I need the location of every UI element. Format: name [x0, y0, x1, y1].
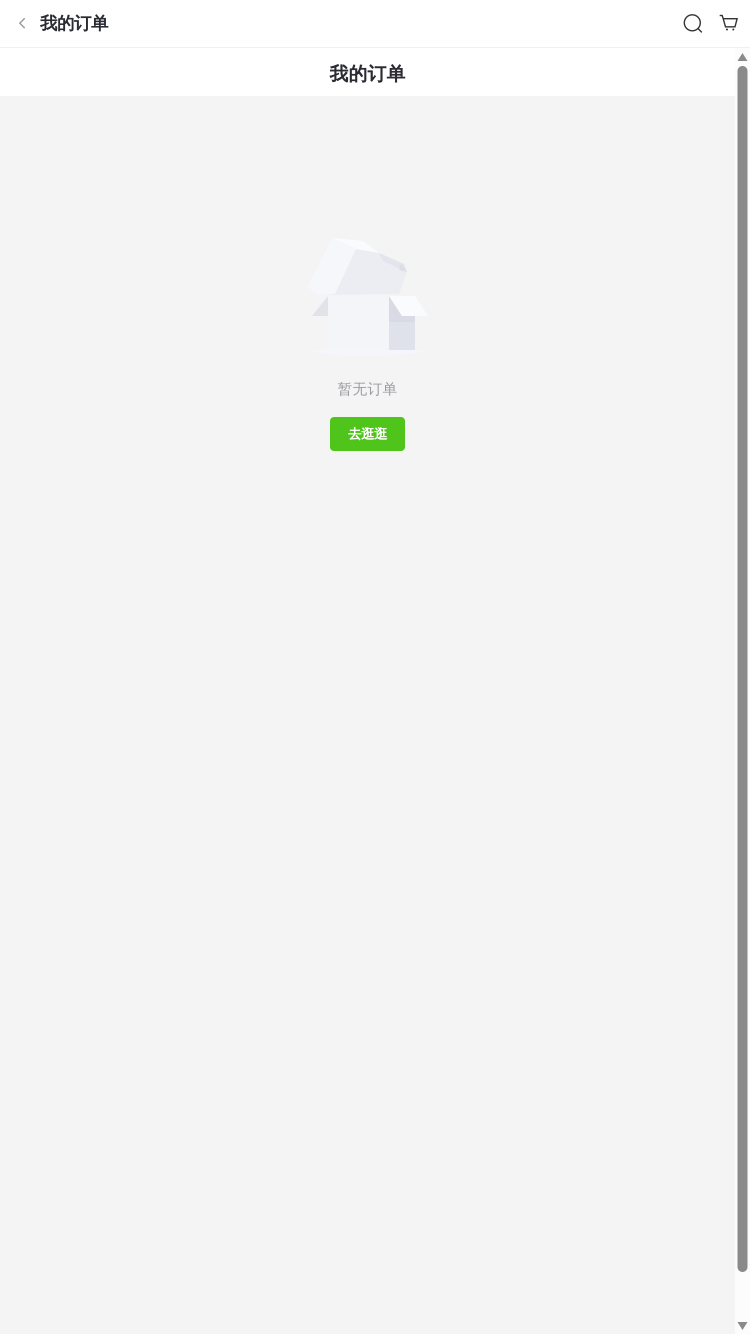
- button[interactable]: Back: [0, 0, 40, 47]
- button[interactable]: 去逛逛: [330, 417, 405, 451]
- staticText: 去逛逛: [348, 426, 387, 442]
- staticText: 我的订单: [40, 13, 108, 34]
- button[interactable]: Search: [674, 0, 709, 47]
- staticText: 暂无订单: [337, 380, 397, 398]
- button[interactable]: Cart: [709, 0, 750, 47]
- staticText: 我的订单: [329, 62, 405, 85]
